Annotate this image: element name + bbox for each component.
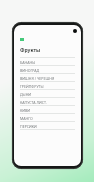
staticText: КИВИ	[20, 108, 31, 113]
staticText: МАНГО	[20, 116, 33, 121]
button[interactable]: ДЫНИ	[20, 90, 75, 98]
button[interactable]: БАНАНЫ	[20, 58, 75, 66]
staticText: Фрукты	[20, 47, 41, 54]
button[interactable]: МАНГО	[20, 114, 75, 122]
button[interactable]: ВИНОГРАД	[20, 66, 75, 74]
staticText: ВИШНЯ / ЧЕРЕШНЯ	[20, 76, 55, 81]
button[interactable]: ГРЕЙПФРУТЫ	[20, 82, 75, 90]
staticText: ГРЕЙПФРУТЫ	[20, 84, 44, 89]
button[interactable]: КИВИ	[20, 106, 75, 114]
staticText: БАНАНЫ	[20, 60, 36, 65]
staticText: ДЫНИ	[20, 92, 32, 97]
button[interactable]: ПЕРСИКИ	[20, 122, 75, 130]
button[interactable]: КАПУСТА ЛИСТ.	[20, 98, 75, 106]
staticText: ПЕРСИКИ	[20, 124, 37, 129]
button[interactable]: ВИШНЯ / ЧЕРЕШНЯ	[20, 74, 75, 82]
staticText: КАПУСТА ЛИСТ.	[20, 100, 47, 105]
staticText: ВИНОГРАД	[20, 68, 40, 73]
